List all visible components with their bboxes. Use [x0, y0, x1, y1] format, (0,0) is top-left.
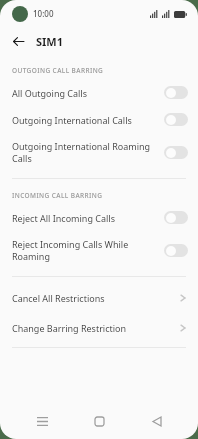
staticText: SIM1 — [36, 34, 64, 49]
button[interactable]: Recent apps — [26, 405, 58, 437]
staticText: Change Barring Restriction — [12, 322, 172, 334]
staticText: Cancel All Restrictions — [12, 292, 172, 304]
button[interactable]: Outgoing International Calls — [0, 106, 198, 133]
button[interactable]: Home — [83, 405, 115, 437]
button[interactable]: Outgoing International Roaming Calls — [0, 133, 198, 172]
button[interactable]: Change Barring Restriction — [0, 313, 198, 343]
staticText: INCOMING CALL BARRING — [12, 191, 103, 200]
button[interactable]: Back — [141, 405, 173, 437]
button[interactable]: Reject All Incoming Calls — [0, 204, 198, 231]
button[interactable]: Reject Incoming Calls While Roaming — [0, 231, 198, 270]
staticText: 10:00 — [33, 8, 54, 19]
staticText: Outgoing International Calls — [12, 114, 156, 126]
staticText: Reject All Incoming Calls — [12, 212, 156, 224]
button[interactable]: Cancel All Restrictions — [0, 283, 198, 313]
staticText: Outgoing International Roaming Calls — [12, 140, 156, 165]
button[interactable]: All Outgoing Calls — [0, 79, 198, 106]
button[interactable]: Back — [6, 29, 30, 53]
staticText: All Outgoing Calls — [12, 87, 156, 99]
staticText: Reject Incoming Calls While Roaming — [12, 238, 156, 263]
staticText: OUTGOING CALL BARRING — [12, 66, 104, 75]
